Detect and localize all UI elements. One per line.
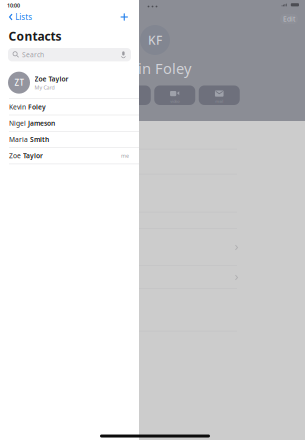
button[interactable]: Kevin [0,99,139,115]
staticText: My Card [34,84,54,91]
staticText: KF [148,32,162,48]
staticText: 10:00 [7,2,20,9]
staticText: me [121,152,129,159]
button[interactable]: Nigel [0,115,139,131]
button[interactable]: ZT [0,67,139,98]
button[interactable]: call [110,85,151,105]
button[interactable]: video [154,85,195,105]
staticText: Zoe [9,151,23,160]
staticText: Jameson [28,119,55,128]
staticText: Taylor [23,151,43,160]
staticText: Kevin Foley [114,58,191,78]
button[interactable]: mail [199,85,240,105]
staticText: Smith [30,135,49,144]
button[interactable]: Lists [9,10,32,24]
button[interactable]: Maria [0,132,139,147]
button[interactable]: Add contact [119,12,129,22]
button[interactable]: Edit [280,14,298,24]
staticText: Maria [9,135,30,144]
button[interactable]: message [65,85,106,105]
staticText: Edit [283,15,295,23]
staticText: Foley [28,102,46,111]
staticText: Nigel [9,119,28,128]
button[interactable]: Zoe [0,148,139,164]
staticText: video [170,99,179,104]
staticText: mail [215,99,223,104]
staticText: ZT [14,77,23,88]
staticText: Kevin [9,102,28,111]
staticText: Zoe Taylor [34,74,68,83]
staticText: Contacts [8,28,61,44]
staticText: Search [22,50,44,59]
staticText: Lists [15,12,32,22]
